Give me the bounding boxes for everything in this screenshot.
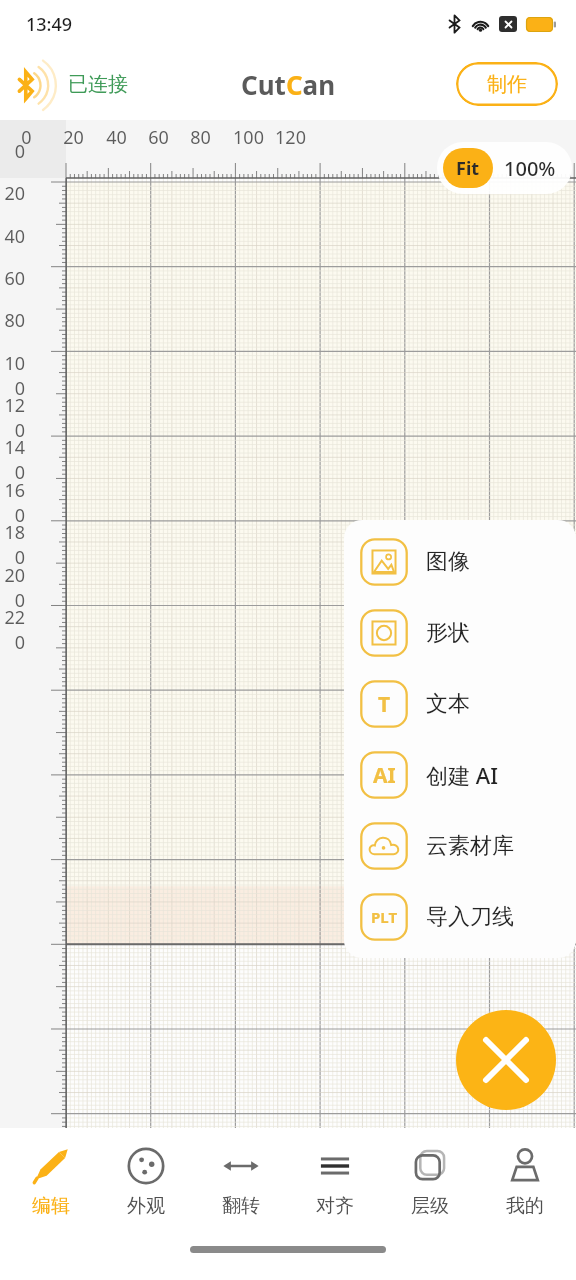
staticText: 外观: [127, 1194, 165, 1218]
button[interactable]: 已连接: [4, 52, 134, 116]
staticText: 0: [0, 139, 25, 164]
button[interactable]: T: [344, 668, 576, 739]
staticText: 20: [63, 125, 84, 150]
staticText: 80: [0, 308, 25, 333]
staticText: 60: [148, 125, 169, 150]
staticText: 形状: [426, 619, 470, 647]
button[interactable]: 制作: [456, 62, 558, 106]
button[interactable]: 云素材库: [344, 810, 576, 881]
button[interactable]: PLT: [344, 881, 576, 952]
button[interactable]: 编辑: [7, 1140, 95, 1222]
button[interactable]: Fit: [437, 142, 572, 194]
staticText: 20: [0, 181, 25, 206]
staticText: PLT: [371, 907, 398, 927]
staticText: 文本: [426, 690, 470, 718]
staticText: 0: [21, 125, 32, 150]
staticText: 80: [190, 125, 211, 150]
staticText: 120: [0, 393, 25, 443]
staticText: 120: [275, 125, 306, 150]
staticText: 40: [0, 224, 25, 249]
staticText: 180: [0, 520, 25, 570]
staticText: 图像: [426, 548, 470, 576]
button[interactable]: 形状: [344, 597, 576, 668]
staticText: 翻转: [222, 1194, 260, 1218]
staticText: 层级: [411, 1194, 449, 1218]
staticText: 100%: [504, 155, 556, 182]
button[interactable]: 翻转: [197, 1140, 285, 1222]
staticText: 制作: [487, 72, 527, 97]
staticText: 140: [0, 435, 25, 485]
button[interactable]: 外观: [102, 1140, 190, 1222]
staticText: 对齐: [316, 1194, 354, 1218]
staticText: 160: [0, 478, 25, 528]
button[interactable]: 层级: [386, 1140, 474, 1222]
staticText: 云素材库: [426, 832, 514, 860]
staticText: 60: [0, 266, 25, 291]
button[interactable]: AI: [344, 739, 576, 810]
staticText: 13:49: [26, 12, 73, 37]
staticText: 100: [0, 351, 25, 401]
staticText: 编辑: [32, 1194, 70, 1218]
staticText: 创建 AI: [426, 760, 498, 790]
button[interactable]: 图像: [344, 526, 576, 597]
button[interactable]: 我的: [481, 1140, 569, 1222]
staticText: 我的: [506, 1194, 544, 1218]
button[interactable]: Close add menu: [456, 1010, 556, 1110]
staticText: 已连接: [68, 72, 128, 97]
staticText: 100: [233, 125, 264, 150]
staticText: T: [378, 690, 391, 719]
staticText: AI: [373, 761, 396, 790]
staticText: Fit: [456, 156, 480, 181]
staticText: 200: [0, 563, 25, 613]
staticText: 40: [106, 125, 127, 150]
button[interactable]: 对齐: [291, 1140, 379, 1222]
staticText: 220: [0, 605, 25, 655]
staticText: 导入刀线: [426, 903, 514, 931]
staticText: CutCan: [241, 67, 336, 102]
